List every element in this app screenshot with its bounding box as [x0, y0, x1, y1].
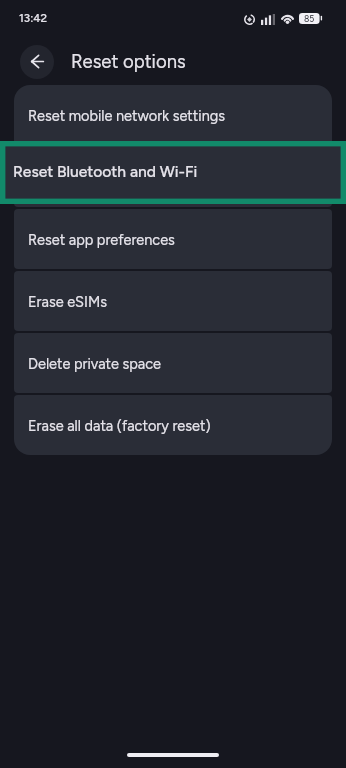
- staticText: 85: [304, 14, 315, 24]
- staticText: Reset app preferences: [28, 231, 175, 248]
- button[interactable]: Delete private space: [14, 333, 332, 393]
- button[interactable]: Reset Bluetooth and Wi-Fi: [14, 147, 332, 207]
- staticText: Reset Bluetooth and Wi-Fi: [13, 162, 198, 181]
- button[interactable]: Erase eSIMs: [14, 271, 332, 331]
- button[interactable]: Reset Bluetooth and Wi-Fi: [0, 141, 346, 204]
- staticText: Erase all data (factory reset): [28, 417, 211, 434]
- staticText: Reset mobile network settings: [28, 107, 226, 124]
- staticText: Reset Bluetooth and Wi-Fi: [28, 169, 199, 186]
- button[interactable]: Erase all data (factory reset): [14, 395, 332, 455]
- staticText: Delete private space: [28, 355, 161, 372]
- staticText: 13:42: [19, 11, 48, 25]
- staticText: Erase eSIMs: [28, 293, 107, 310]
- button[interactable]: Reset mobile network settings: [14, 85, 332, 145]
- button[interactable]: Back: [20, 45, 54, 79]
- button[interactable]: Reset app preferences: [14, 209, 332, 269]
- staticText: Reset options: [71, 50, 186, 72]
